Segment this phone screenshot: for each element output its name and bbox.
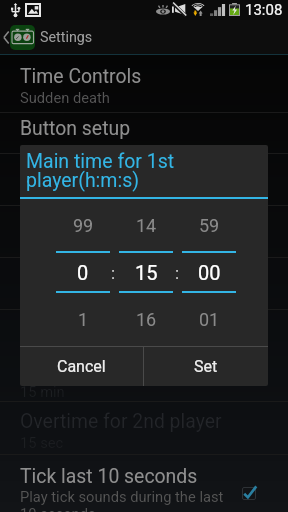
button[interactable]: Main time for 1st player: [0, 154, 288, 204]
staticText: 1: [78, 309, 89, 330]
staticText: 99: [73, 215, 94, 236]
staticText: 13:08: [245, 1, 283, 19]
staticText: Settings: [40, 29, 93, 46]
staticText: Set: [194, 357, 218, 376]
button[interactable]: 0: [56, 260, 110, 284]
staticText: Cancel: [57, 357, 106, 376]
staticText: 01: [199, 309, 220, 330]
staticText: 15 min: [20, 182, 65, 199]
staticText: 15 min: [20, 383, 65, 400]
staticText: 16: [136, 309, 157, 330]
staticText: Overtime for 1st player: [20, 359, 217, 382]
staticText: Sudden death: [20, 89, 110, 106]
button[interactable]: Main time for 2nd player: [0, 206, 288, 256]
button[interactable]: Set: [144, 347, 268, 386]
button[interactable]: Tick last 10 seconds: [0, 455, 288, 512]
button[interactable]: Overtime for 2nd player: [0, 406, 288, 456]
staticText: 15: [135, 261, 158, 284]
staticText: 00: [198, 261, 221, 284]
button[interactable]: Time Controls: [0, 61, 288, 111]
staticText: Main time for 2nd player: [20, 210, 230, 233]
staticText: Time Controls: [20, 65, 142, 88]
staticText: 15 sec: [20, 434, 64, 451]
button[interactable]: Button setup: [0, 113, 288, 153]
staticText: 15 sec: [20, 286, 64, 303]
staticText: Tick last 10 seconds: [20, 465, 198, 488]
staticText: Overtime for 2nd player: [20, 410, 222, 433]
button[interactable]: Overtime for 1st player: [0, 355, 288, 405]
staticText: 0: [77, 261, 89, 284]
staticText: :: [111, 263, 116, 281]
staticText: Button setup: [20, 117, 131, 140]
staticText: Overtime for 1st player: [20, 262, 217, 285]
button[interactable]: Overtime for 1st player: [0, 258, 288, 308]
staticText: :: [175, 263, 180, 281]
button[interactable]: Navigate up: [0, 20, 288, 55]
button[interactable]: 00: [182, 260, 236, 284]
staticText: 59: [199, 215, 220, 236]
staticText: Play tick sounds during the last 10 seco…: [20, 488, 227, 512]
button[interactable]: Cancel: [20, 347, 143, 386]
staticText: Main time for 1st player: [20, 158, 225, 181]
staticText: 14: [136, 215, 157, 236]
staticText: Main time for 1st player(h:m:s): [26, 150, 175, 192]
button[interactable]: 15: [119, 260, 173, 284]
